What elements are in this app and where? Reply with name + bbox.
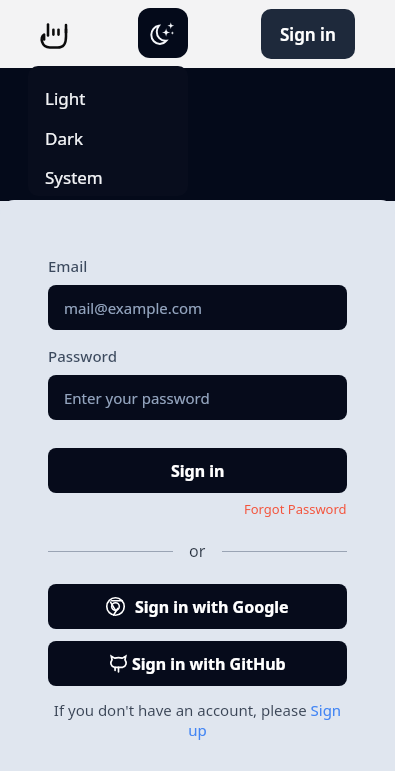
staticText: Dark	[45, 127, 84, 150]
button[interactable]: Sign in	[261, 9, 355, 59]
button[interactable]: Enter your password	[48, 375, 347, 420]
button[interactable]: Light	[28, 78, 188, 118]
staticText: Sign in with Google	[135, 596, 289, 618]
staticText: If you don't have an account, please Sig…	[48, 700, 347, 740]
staticText: Sign in with GitHub	[132, 653, 286, 675]
staticText: Email	[48, 256, 88, 276]
button[interactable]: Toggle theme	[138, 8, 188, 58]
button[interactable]: System	[28, 158, 188, 196]
staticText: Enter your password	[64, 388, 210, 408]
staticText: Sign in	[171, 460, 225, 482]
staticText: or	[189, 540, 206, 562]
staticText: Password	[48, 346, 117, 366]
button[interactable]: Dark	[28, 118, 188, 158]
button[interactable]: Forgot Password	[244, 500, 347, 518]
staticText: mail@example.com	[64, 298, 203, 318]
staticText: System	[45, 166, 103, 189]
button[interactable]: Sign in with Google	[48, 584, 347, 629]
staticText: Light	[45, 87, 86, 110]
button[interactable]: Sign in	[48, 448, 347, 493]
staticText: Forgot Password	[244, 500, 347, 518]
button[interactable]: Sign in with GitHub	[48, 641, 347, 686]
button[interactable]: Home logo	[32, 12, 76, 56]
button[interactable]: mail@example.com	[48, 285, 347, 330]
staticText: Sign in	[280, 23, 336, 46]
